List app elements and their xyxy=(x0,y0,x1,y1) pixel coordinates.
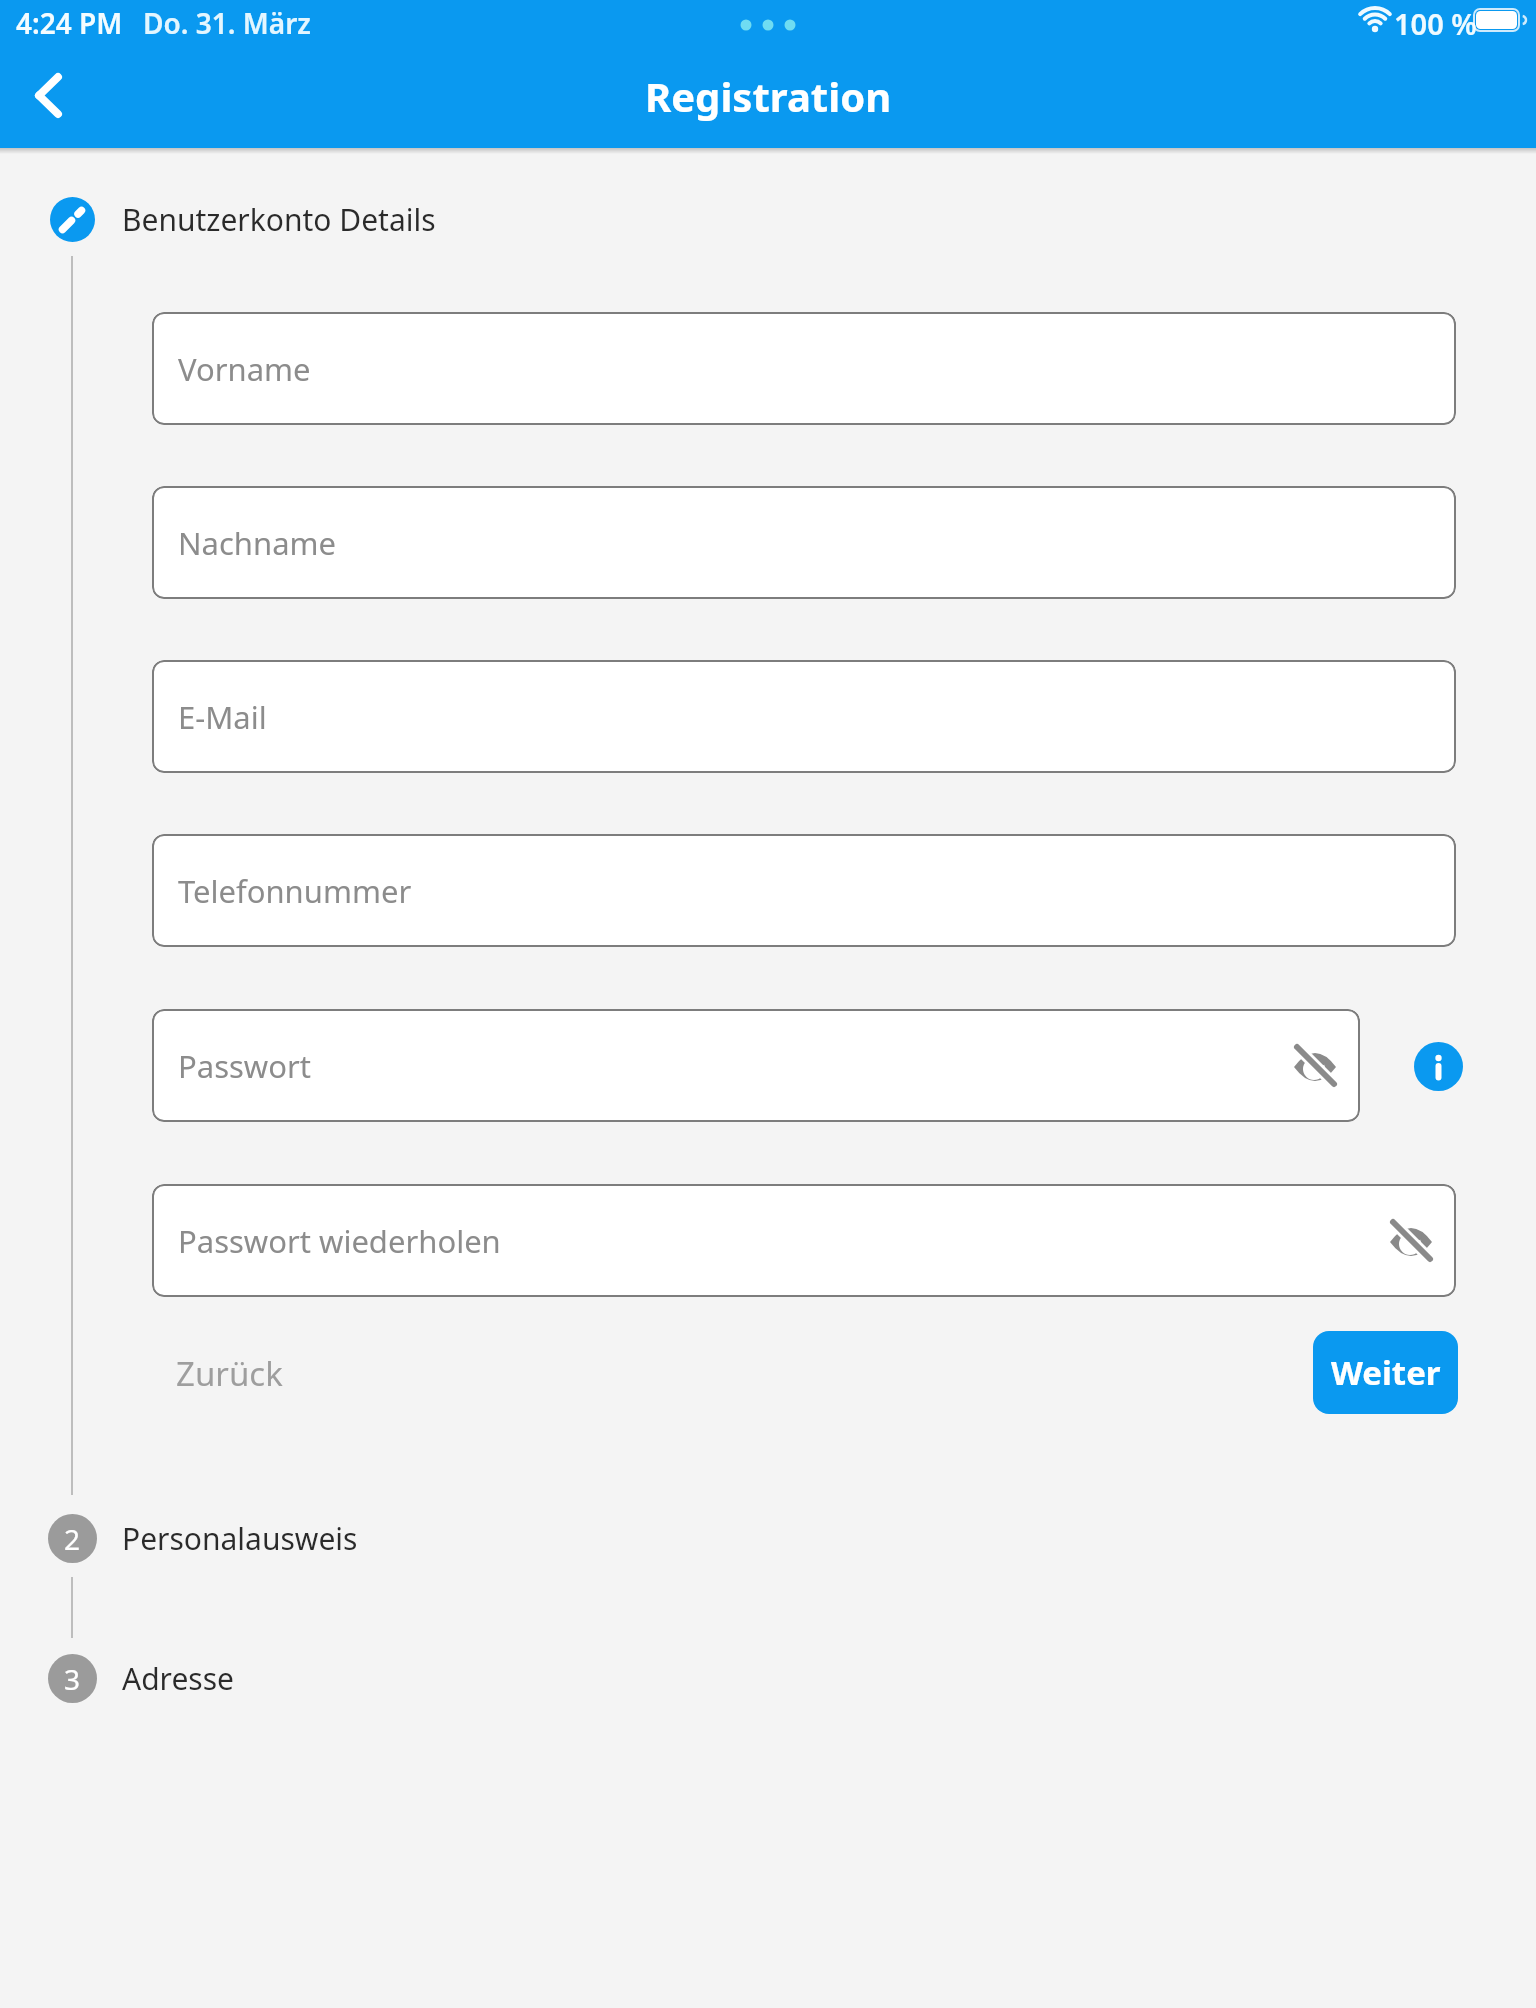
button[interactable]: Zurück xyxy=(160,1338,300,1408)
staticText: Personalausweis xyxy=(122,1518,358,1559)
button[interactable] xyxy=(16,62,80,128)
staticText: Nachname xyxy=(178,522,337,564)
staticText: Vorname xyxy=(178,348,311,390)
staticText: Weiter xyxy=(1331,1350,1441,1395)
staticText: E-Mail xyxy=(178,696,267,738)
staticText: 3 xyxy=(64,1660,81,1698)
button[interactable]: Nachname xyxy=(152,486,1456,599)
staticText: Passwort xyxy=(178,1045,311,1087)
button[interactable]: Vorname xyxy=(152,312,1456,425)
staticText: 2 xyxy=(64,1520,81,1558)
staticText: Zurück xyxy=(176,1351,283,1396)
button[interactable]: E-Mail xyxy=(152,660,1456,773)
staticText: Telefonnummer xyxy=(178,870,412,912)
button[interactable]: Passwort wiederholen xyxy=(152,1184,1456,1297)
button[interactable]: Telefonnummer xyxy=(152,834,1456,947)
staticText: 100 % xyxy=(1394,4,1477,38)
staticText: Benutzerkonto Details xyxy=(122,199,436,240)
button[interactable]: Weiter xyxy=(1313,1331,1458,1414)
staticText: 4:24 PM xyxy=(16,4,123,38)
button[interactable] xyxy=(1414,1042,1463,1091)
staticText: Adresse xyxy=(122,1658,234,1699)
staticText: Do. 31. März xyxy=(143,4,311,38)
staticText: Registration xyxy=(645,69,892,123)
button[interactable]: Passwort xyxy=(152,1009,1360,1122)
staticText: Passwort wiederholen xyxy=(178,1220,501,1262)
